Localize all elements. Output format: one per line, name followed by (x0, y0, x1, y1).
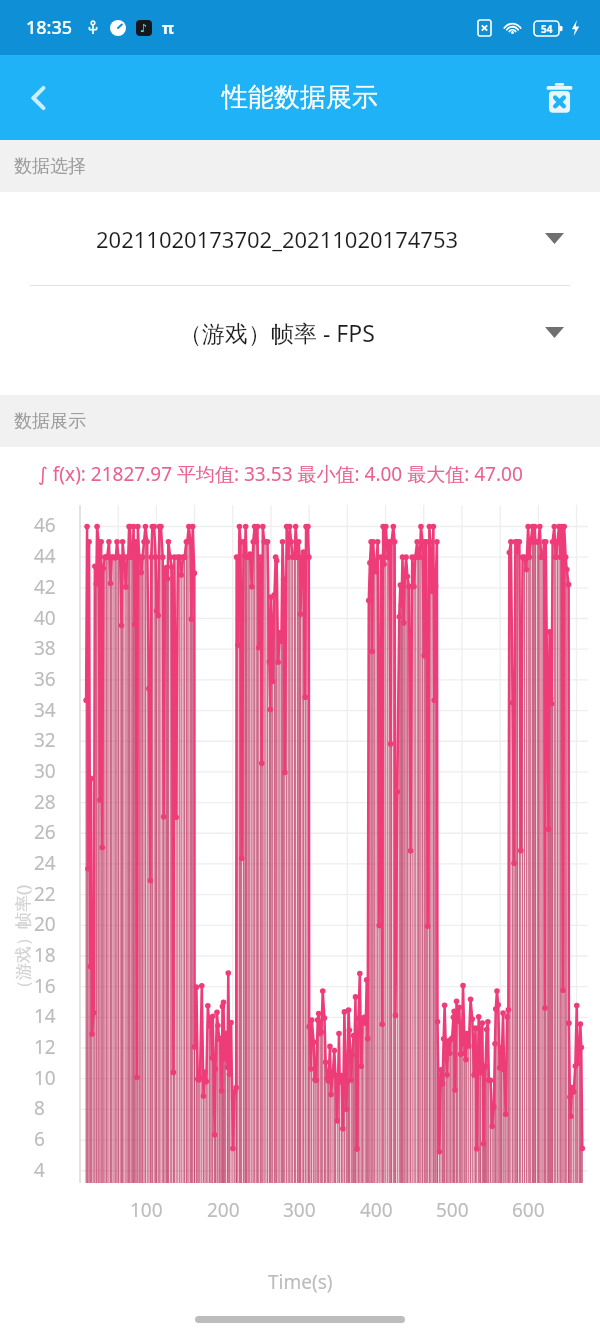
staticText: 4 (34, 1157, 72, 1183)
button[interactable]: 20211020173702_20211020174753 (0, 192, 600, 285)
staticText: 200 (207, 1197, 240, 1223)
staticText: 24 (34, 850, 72, 876)
staticText: 18:35 (26, 15, 73, 40)
staticText: 数据展示 (14, 410, 86, 433)
staticText: 10 (34, 1065, 72, 1091)
staticText: π (162, 17, 174, 39)
staticText: 34 (34, 697, 72, 723)
staticText: 14 (34, 1003, 72, 1029)
staticText: 28 (34, 789, 72, 815)
staticText: Time(s) (268, 1269, 333, 1295)
staticText: 20 (34, 911, 72, 937)
staticText: 16 (34, 973, 72, 999)
staticText: 12 (34, 1034, 72, 1060)
staticText: 46 (34, 512, 72, 538)
staticText: 38 (34, 635, 72, 661)
staticText: 36 (34, 666, 72, 692)
staticText: 32 (34, 727, 72, 753)
staticText: ∫ f(x): 21827.97 平均值: 33.53 最小值: 4.00 最大… (38, 461, 523, 487)
staticText: 600 (512, 1197, 545, 1223)
staticText: 100 (130, 1197, 163, 1223)
staticText: （游戏）帧率() (11, 884, 34, 997)
staticText: 400 (360, 1197, 393, 1223)
button[interactable]: Back (6, 65, 72, 131)
staticText: 20211020173702_20211020174753 (96, 224, 459, 254)
staticText: 22 (34, 881, 72, 907)
staticText: 42 (34, 574, 72, 600)
staticText: 30 (34, 758, 72, 784)
staticText: ♪ (140, 22, 148, 35)
staticText: 性能数据展示 (222, 81, 378, 114)
staticText: 数据选择 (14, 155, 86, 178)
button[interactable]: （游戏）帧率 - FPS (0, 286, 600, 379)
staticText: 500 (436, 1197, 469, 1223)
button[interactable]: Delete (530, 69, 588, 127)
staticText: 26 (34, 819, 72, 845)
staticText: 44 (34, 543, 72, 569)
staticText: 6 (34, 1126, 72, 1152)
staticText: 40 (34, 605, 72, 631)
staticText: 18 (34, 942, 72, 968)
staticText: 54 (541, 22, 553, 36)
staticText: （游戏）帧率 - FPS (179, 317, 375, 348)
staticText: 300 (283, 1197, 316, 1223)
staticText: 8 (34, 1095, 72, 1121)
